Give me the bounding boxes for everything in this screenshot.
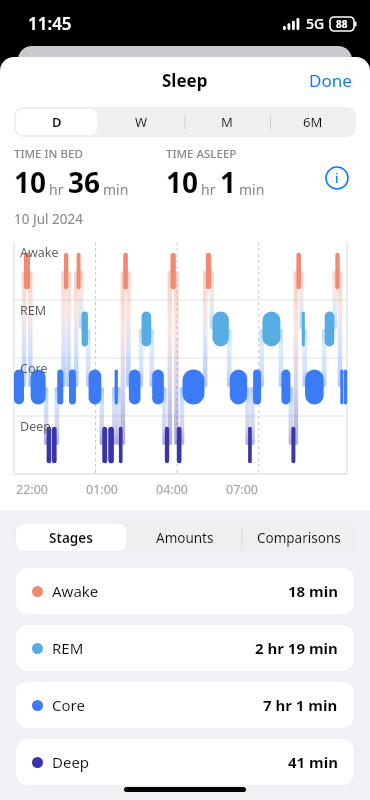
- staticText: Deep: [52, 752, 90, 772]
- staticText: Awake: [52, 581, 99, 601]
- staticText: 01:00: [86, 481, 118, 498]
- staticText: 88: [336, 17, 348, 31]
- button[interactable]: Awake: [16, 568, 354, 614]
- staticText: 10 Jul 2024: [14, 210, 83, 228]
- staticText: 04:00: [156, 481, 188, 498]
- staticText: 10: [166, 163, 199, 201]
- staticText: Stages: [49, 529, 93, 547]
- staticText: Comparisons: [257, 529, 341, 547]
- staticText: 22:00: [16, 481, 48, 498]
- staticText: D: [52, 113, 62, 131]
- staticText: 7 hr 1 min: [263, 695, 338, 715]
- staticText: Amounts: [156, 529, 214, 547]
- button[interactable]: Done: [291, 61, 370, 100]
- staticText: TIME IN BED: [14, 146, 83, 162]
- staticText: W: [135, 113, 148, 131]
- staticText: min: [239, 180, 265, 199]
- staticText: Awake: [20, 244, 59, 261]
- button[interactable]: 6M: [272, 109, 354, 135]
- staticText: 11:45: [28, 12, 72, 35]
- staticText: Sleep: [162, 69, 208, 92]
- button[interactable]: M: [186, 109, 268, 135]
- staticText: Core: [52, 695, 85, 715]
- staticText: hr: [201, 180, 216, 199]
- staticText: 6M: [303, 113, 323, 131]
- staticText: Core: [20, 360, 48, 377]
- button[interactable]: REM: [16, 625, 354, 671]
- staticText: 07:00: [226, 481, 258, 498]
- staticText: 41 min: [288, 752, 338, 772]
- button[interactable]: Stages: [16, 524, 126, 551]
- staticText: 5G: [306, 14, 325, 33]
- button[interactable]: Core: [16, 682, 354, 728]
- button[interactable]: Amounts: [130, 524, 240, 551]
- staticText: Deep: [20, 418, 51, 435]
- button[interactable]: Comparisons: [244, 524, 354, 551]
- staticText: Done: [309, 69, 352, 92]
- staticText: 10: [14, 163, 47, 201]
- staticText: 2 hr 19 min: [255, 638, 338, 658]
- staticText: hr: [49, 180, 64, 199]
- staticText: 1: [220, 163, 237, 201]
- staticText: min: [103, 180, 129, 199]
- button[interactable]: W: [101, 109, 182, 135]
- staticText: 36: [68, 163, 101, 201]
- staticText: i: [335, 169, 339, 187]
- staticText: 18 min: [288, 581, 338, 601]
- button[interactable]: Deep: [16, 739, 354, 785]
- button[interactable]: D: [16, 109, 97, 135]
- staticText: REM: [52, 638, 84, 658]
- staticText: M: [221, 113, 233, 131]
- staticText: TIME ASLEEP: [166, 146, 237, 162]
- staticText: REM: [20, 302, 47, 319]
- button[interactable]: Information about sleep stages: [320, 161, 354, 195]
